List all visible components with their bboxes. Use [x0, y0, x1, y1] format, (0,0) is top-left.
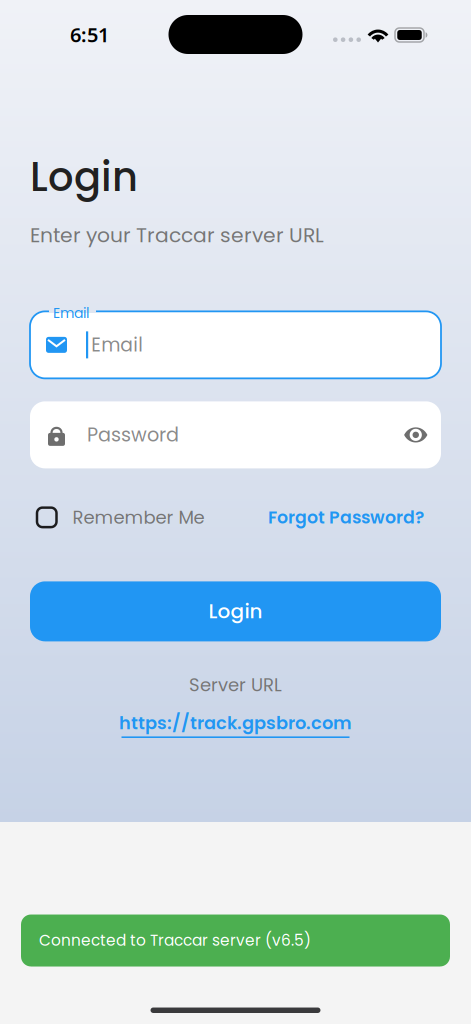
staticText: Login — [30, 149, 138, 205]
button[interactable]: Forgot Password? — [268, 505, 441, 529]
staticText: Remember Me — [72, 505, 204, 530]
staticText: Email — [53, 303, 89, 323]
button[interactable]: Login — [30, 581, 441, 641]
button[interactable]: Show password — [403, 412, 441, 458]
button[interactable]: Remember Me — [30, 505, 204, 530]
staticText: https://track.gpsbro.com — [119, 711, 352, 735]
staticText: Enter your Traccar server URL — [30, 221, 324, 249]
staticText: Connected to Traccar server (v6.5) — [39, 930, 311, 951]
staticText: Email — [91, 332, 143, 358]
staticText: Server URL — [189, 672, 282, 698]
staticText: 6:51 — [70, 21, 109, 48]
staticText: Login — [208, 597, 262, 625]
staticText: Password — [87, 421, 179, 448]
button[interactable]: https://track.gpsbro.com — [119, 711, 352, 738]
staticText: Forgot Password? — [268, 505, 424, 529]
